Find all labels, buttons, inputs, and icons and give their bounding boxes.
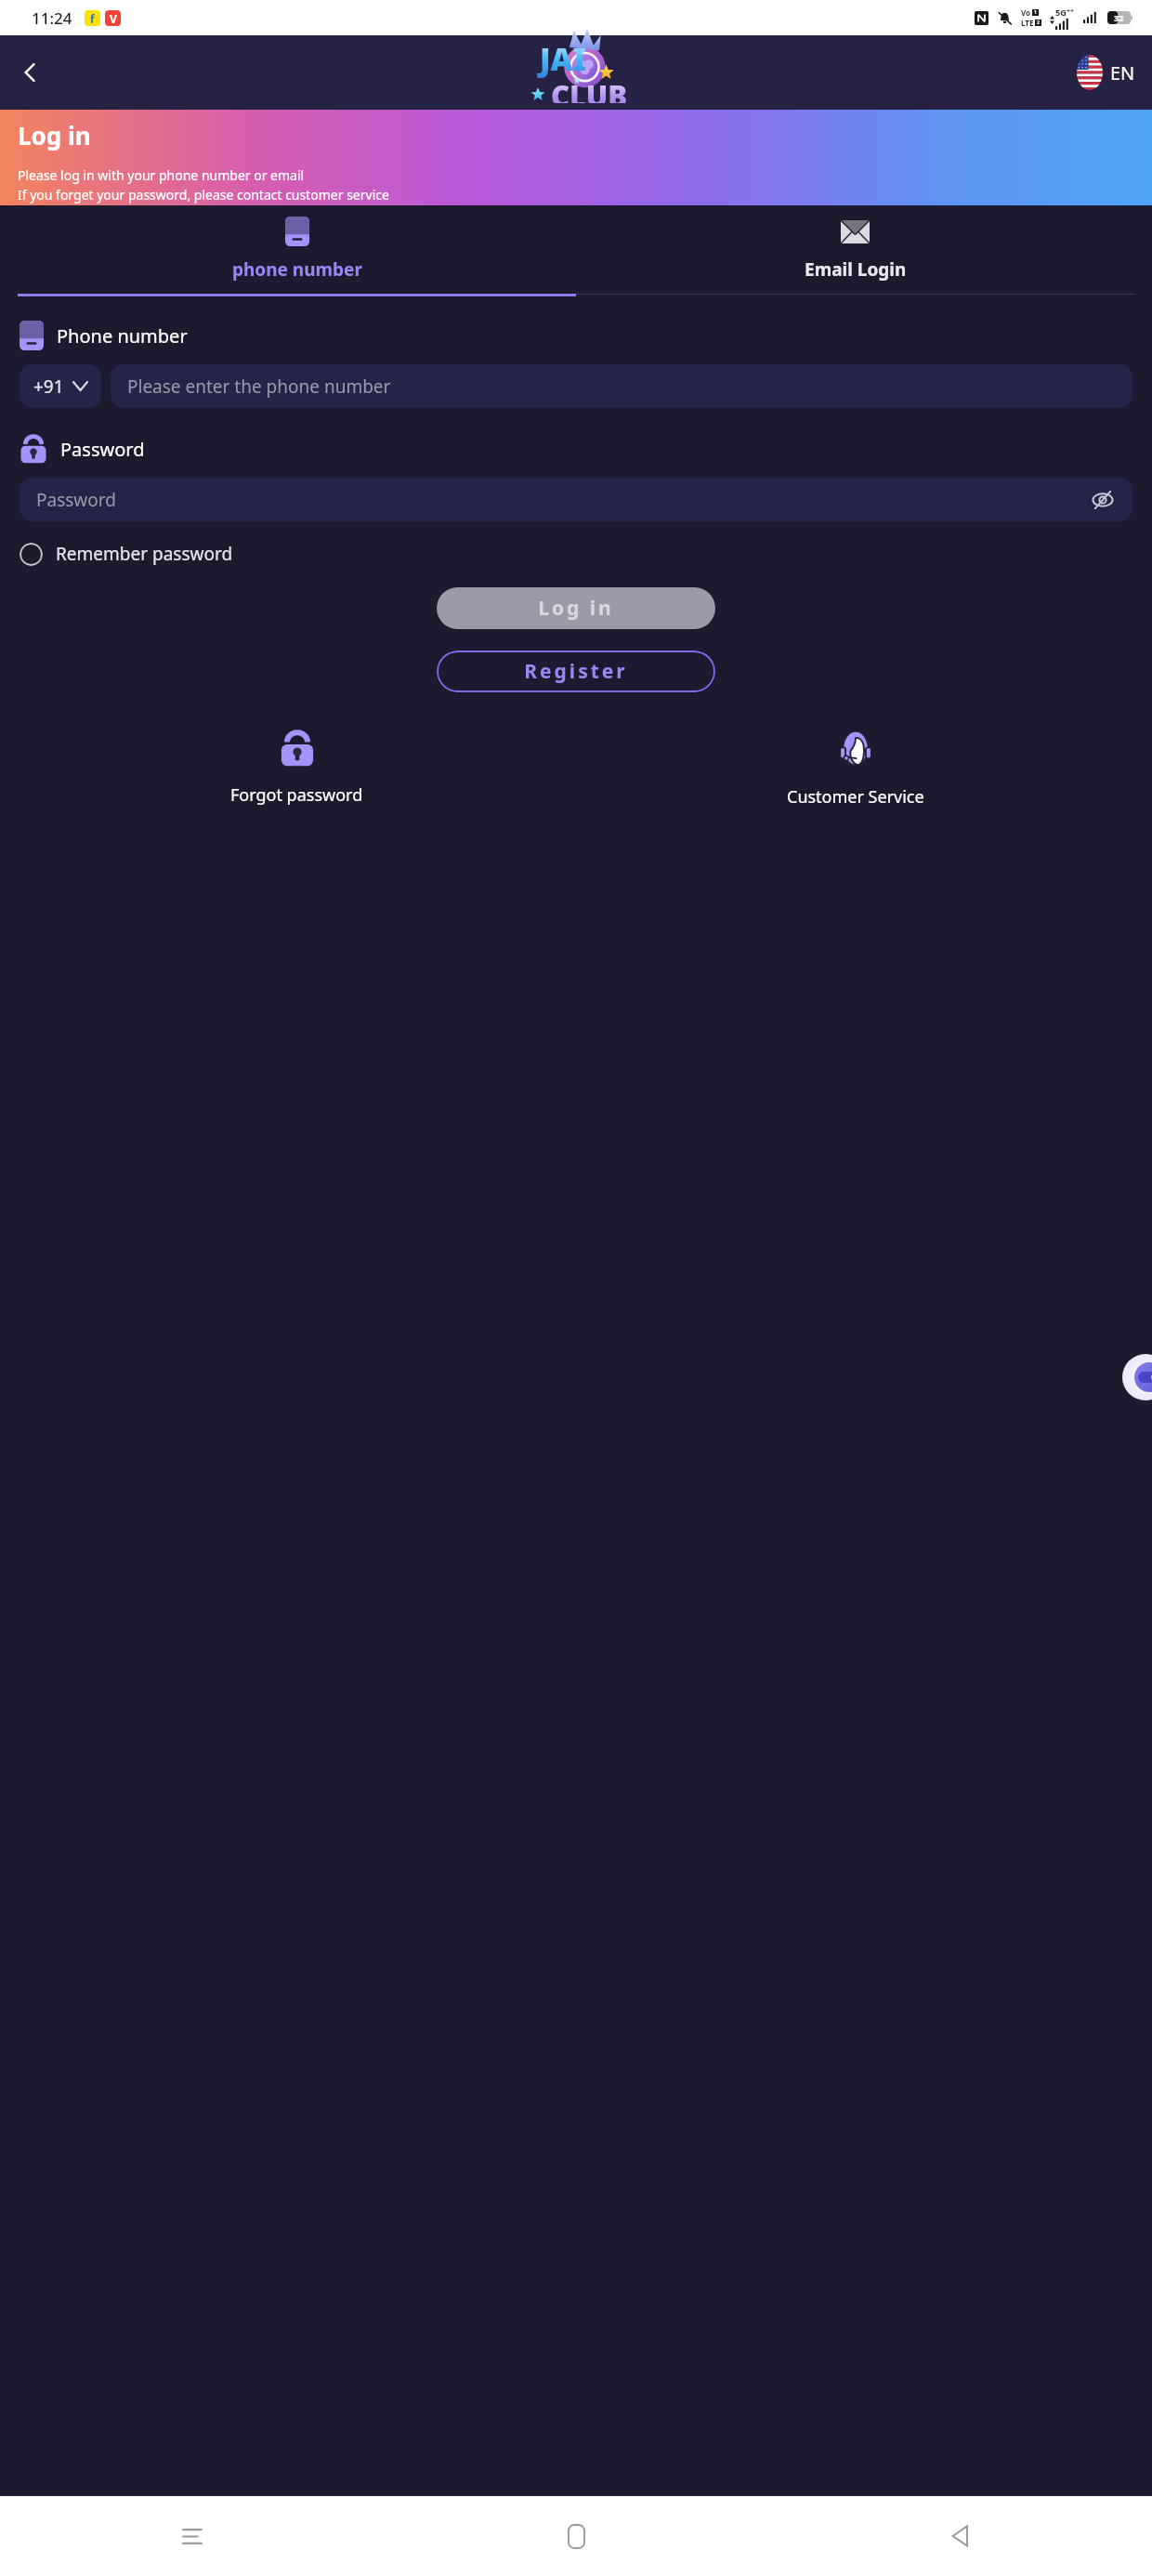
button[interactable]: Please enter the phone number — [111, 364, 1132, 408]
staticText: Customer Service — [787, 785, 924, 808]
button[interactable]: Back — [768, 2496, 1152, 2576]
staticText: Phone number — [57, 323, 188, 348]
staticText: Email Login — [805, 257, 907, 282]
staticText: Please log in with your phone number or … — [18, 166, 305, 184]
button[interactable]: EN — [1077, 55, 1135, 90]
staticText: LTE — [1021, 18, 1034, 28]
button[interactable]: Email Login — [576, 205, 1134, 295]
staticText: Password — [60, 437, 145, 462]
button[interactable]: Back — [9, 51, 52, 94]
button[interactable]: Show password — [1090, 487, 1116, 513]
staticText: ++ — [1067, 7, 1075, 16]
staticText: 32 — [1114, 12, 1124, 23]
staticText: +91 — [33, 375, 64, 399]
staticText: f — [90, 11, 95, 26]
staticText: Log in — [18, 119, 91, 151]
button[interactable]: Customer Service — [576, 729, 1134, 808]
staticText: Forgot password — [230, 783, 363, 807]
button[interactable]: Password — [20, 478, 1132, 521]
button[interactable]: Forgot password — [18, 729, 576, 807]
staticText: V — [110, 11, 117, 26]
staticText: 1 — [1034, 9, 1037, 16]
staticText: EN — [1110, 60, 1135, 85]
button[interactable]: Register — [437, 651, 715, 692]
staticText: 2 — [1037, 20, 1040, 26]
button[interactable]: Home — [385, 2496, 768, 2576]
button[interactable]: Remember password — [20, 542, 233, 566]
button[interactable]: +91 — [20, 364, 101, 408]
button[interactable]: Recent apps — [0, 2496, 385, 2576]
staticText: CLUB — [551, 76, 628, 103]
button[interactable]: Log in — [437, 587, 715, 629]
staticText: Remember password — [56, 542, 233, 566]
button[interactable]: phone number — [18, 205, 576, 296]
staticText: Please enter the phone number — [127, 375, 391, 399]
staticText: Register — [524, 658, 628, 685]
staticText: 5G — [1055, 7, 1067, 18]
staticText: If you forget your password, please cont… — [18, 186, 389, 204]
staticText: Vo — [1021, 7, 1031, 18]
staticText: Log in — [538, 595, 614, 622]
staticText: 11:24 — [32, 7, 72, 29]
staticText: JAI — [540, 38, 587, 80]
staticText: Password — [36, 488, 1090, 512]
staticText: phone number — [232, 257, 362, 282]
